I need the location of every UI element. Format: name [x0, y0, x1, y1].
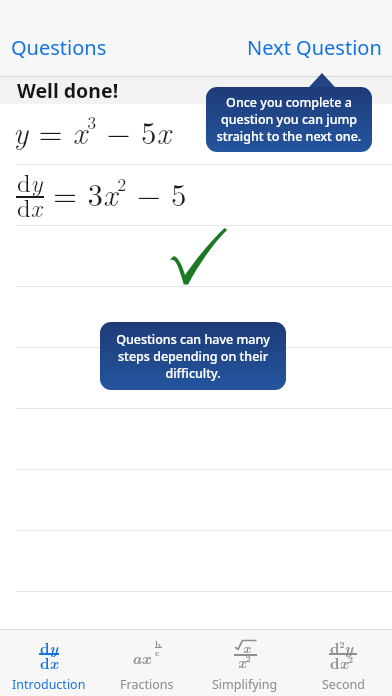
button[interactable]: Questions	[11, 34, 107, 61]
staticText: = 3x2 − 5	[53, 171, 187, 215]
staticText: Once you complete a question you can jum…	[213, 94, 365, 145]
staticText: x	[243, 638, 251, 657]
staticText: x2	[238, 652, 251, 672]
button[interactable]: x	[196, 630, 294, 696]
button[interactable]: dy	[0, 630, 98, 696]
staticText: Simplifying	[212, 676, 278, 693]
button[interactable]: dy	[0, 165, 392, 225]
staticText: dx	[17, 189, 42, 224]
staticText: dx	[40, 652, 59, 674]
staticText: Fractions	[120, 676, 174, 693]
staticText: Well done!	[17, 77, 119, 104]
staticText: y = x3 − 5x	[13, 109, 171, 153]
button[interactable]: Next Question	[247, 34, 382, 61]
staticText: Questions	[11, 34, 107, 61]
staticText: ax	[132, 646, 151, 669]
staticText: Questions can have many steps depending …	[107, 331, 279, 382]
button[interactable]: ax	[98, 630, 196, 696]
staticText: dx2	[330, 652, 353, 674]
staticText: dy	[17, 164, 43, 199]
staticText: b	[155, 638, 161, 651]
staticText: c	[155, 646, 160, 659]
button[interactable]: d2y	[294, 630, 392, 696]
staticText: Second	[322, 676, 365, 693]
staticText: d2y	[330, 637, 354, 659]
staticText: Next Question	[247, 34, 382, 61]
staticText: Introduction	[12, 676, 86, 693]
staticText: dy	[40, 637, 59, 659]
button[interactable]: y = x3 − 5x	[0, 104, 392, 164]
